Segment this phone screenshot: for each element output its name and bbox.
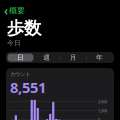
staticText: 概要: [9, 6, 25, 15]
staticText: 年: [96, 53, 103, 62]
button[interactable]: 月: [60, 54, 86, 62]
staticText: 日: [17, 53, 24, 62]
staticText: 8,551: [10, 78, 46, 97]
staticText: ‹: [4, 3, 8, 18]
button[interactable]: 日: [7, 54, 33, 62]
staticText: 週: [43, 53, 50, 62]
staticText: カウント: [10, 71, 30, 78]
staticText: 3,000: [98, 99, 107, 104]
staticText: 月: [70, 53, 77, 62]
button[interactable]: 年: [87, 54, 112, 62]
staticText: 歩数: [7, 18, 41, 39]
staticText: 0: [98, 117, 100, 120]
staticText: 今日: [7, 39, 21, 47]
button[interactable]: 週: [34, 54, 60, 62]
button[interactable]: ‹: [0, 2, 29, 19]
staticText: 1,500: [98, 108, 107, 113]
